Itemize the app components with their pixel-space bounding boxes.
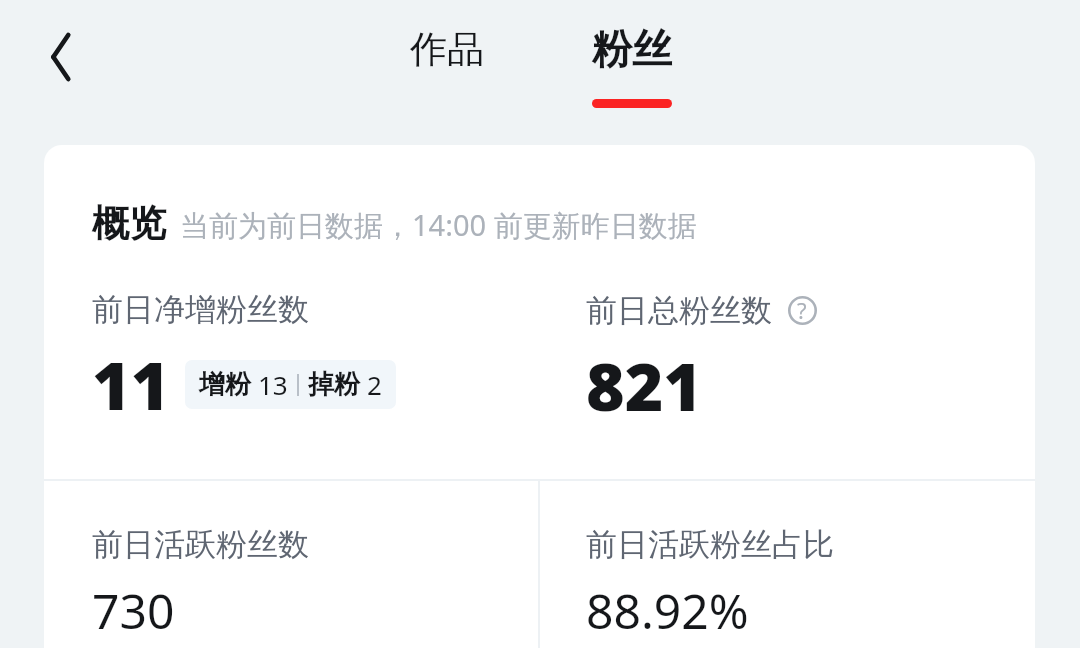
staticText: 821 bbox=[586, 340, 703, 430]
staticText: 13 bbox=[258, 367, 288, 402]
staticText: 前日活跃粉丝数 bbox=[92, 525, 309, 564]
staticText: 作品 bbox=[410, 26, 484, 73]
staticText: 掉粉 bbox=[308, 368, 360, 401]
button[interactable]: 增粉 bbox=[185, 360, 396, 409]
button[interactable]: 粉丝 bbox=[562, 9, 702, 117]
button[interactable]: Help bbox=[782, 290, 822, 330]
staticText: 2 bbox=[367, 367, 382, 402]
staticText: 730 bbox=[92, 578, 175, 643]
staticText: 增粉 bbox=[199, 368, 251, 401]
button[interactable]: Back bbox=[15, 9, 111, 105]
staticText: ? bbox=[797, 295, 807, 325]
button[interactable]: 作品 bbox=[377, 9, 517, 101]
staticText: 11 bbox=[92, 339, 170, 429]
staticText: 88.92% bbox=[586, 578, 749, 643]
staticText: 前日总粉丝数 bbox=[586, 291, 772, 330]
staticText: 前日净增粉丝数 bbox=[92, 290, 309, 329]
staticText: 概览 bbox=[92, 200, 166, 247]
staticText: 粉丝 bbox=[592, 24, 672, 74]
staticText: 当前为前日数据，14:00 前更新昨日数据 bbox=[180, 205, 697, 245]
staticText: 前日活跃粉丝占比 bbox=[586, 525, 834, 564]
